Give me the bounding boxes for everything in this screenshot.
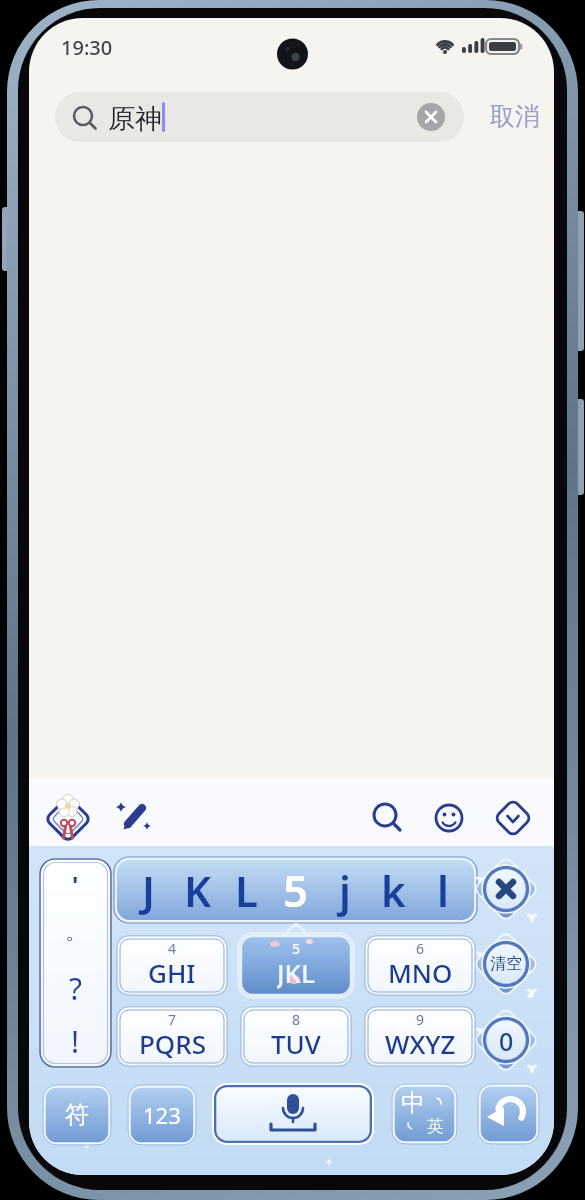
button[interactable]: [474, 857, 538, 921]
button[interactable]: [39, 858, 112, 1068]
button[interactable]: [240, 1006, 352, 1067]
staticText: ': [72, 868, 79, 896]
staticText: 0: [499, 1024, 514, 1056]
button[interactable]: [364, 935, 476, 996]
button[interactable]: [44, 793, 92, 841]
staticText: 19:30: [61, 34, 113, 60]
button[interactable]: [43, 1085, 111, 1145]
staticText: WXYZ: [385, 1026, 456, 1060]
button[interactable]: [55, 92, 464, 142]
staticText: 5: [283, 860, 309, 920]
staticText: 英: [427, 1116, 444, 1137]
staticText: l: [437, 862, 449, 919]
staticText: 原神: [108, 102, 162, 132]
button[interactable]: [213, 1084, 373, 1144]
button[interactable]: [417, 103, 445, 131]
button[interactable]: [491, 796, 535, 840]
staticText: 9: [416, 1010, 425, 1026]
button[interactable]: [474, 1008, 538, 1072]
button[interactable]: [427, 796, 471, 840]
staticText: 清空: [490, 954, 522, 974]
staticText: 5: [292, 939, 301, 955]
staticText: 中: [401, 1088, 425, 1118]
staticText: 。: [65, 918, 87, 946]
button[interactable]: [474, 932, 538, 996]
staticText: JKL: [277, 955, 315, 989]
staticText: !: [71, 1021, 80, 1057]
button[interactable]: [111, 793, 155, 837]
staticText: TUV: [271, 1026, 321, 1060]
staticText: 6: [416, 939, 425, 955]
button[interactable]: [478, 1084, 539, 1144]
button[interactable]: [364, 1006, 476, 1067]
button[interactable]: [240, 935, 352, 996]
button[interactable]: [392, 1084, 457, 1144]
staticText: 8: [292, 1010, 301, 1026]
button[interactable]: [116, 1006, 228, 1067]
button[interactable]: 0: [474, 1024, 538, 1056]
staticText: ?: [69, 968, 83, 1004]
staticText: L: [235, 862, 258, 919]
staticText: PQRS: [139, 1026, 206, 1060]
staticText: GHI: [148, 955, 196, 989]
staticText: MNO: [388, 955, 453, 989]
staticText: 符: [65, 1100, 89, 1130]
staticText: J: [142, 862, 155, 919]
button[interactable]: 清空: [474, 948, 538, 980]
staticText: 123: [143, 1100, 181, 1130]
staticText: K: [184, 862, 212, 919]
staticText: j: [339, 862, 351, 919]
staticText: 取消: [490, 101, 540, 131]
button[interactable]: [116, 935, 228, 996]
staticText: k: [381, 862, 406, 919]
button[interactable]: [365, 796, 409, 840]
button[interactable]: 取消: [485, 101, 545, 131]
staticText: 4: [168, 939, 177, 955]
staticText: 7: [168, 1010, 177, 1026]
button[interactable]: [128, 1085, 196, 1145]
